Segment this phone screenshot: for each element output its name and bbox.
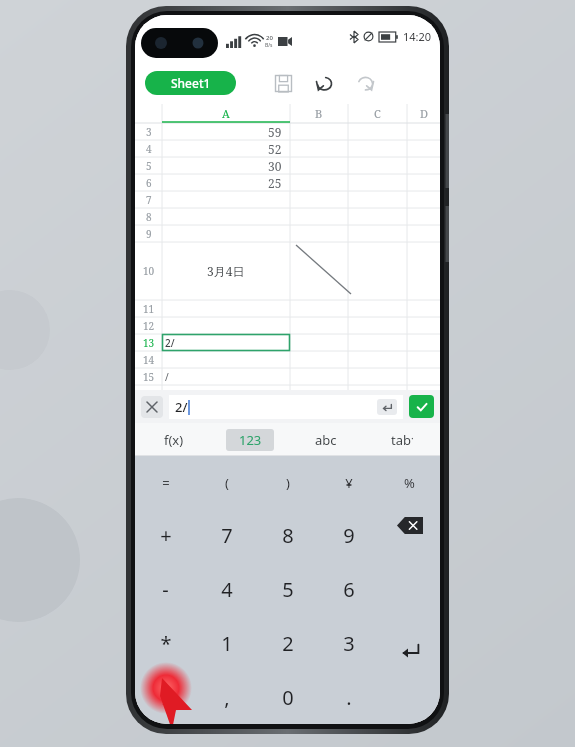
button[interactable]: Sheet1 (145, 71, 236, 95)
button[interactable]: 7 (135, 191, 440, 208)
button[interactable]: 4 (196, 562, 257, 616)
button[interactable]: 5 (257, 562, 318, 616)
staticText: 2/ (175, 398, 188, 416)
staticText: 8 (146, 210, 152, 224)
button[interactable]: 12 (135, 317, 440, 334)
staticText: abc (315, 431, 337, 449)
button[interactable]: , (196, 670, 257, 724)
staticText: 20 (266, 34, 273, 42)
staticText: 2/ (165, 336, 175, 350)
staticText: · (411, 431, 414, 445)
button[interactable]: 1 (196, 616, 257, 670)
button[interactable]: 3 (318, 616, 379, 670)
staticText: 123 (239, 431, 262, 449)
staticText: 7 (221, 522, 233, 549)
button[interactable]: 2/ (169, 395, 403, 419)
button[interactable]: 7 (196, 509, 257, 562)
button[interactable]: Confirm (409, 395, 434, 418)
button[interactable]: f(x) (135, 423, 212, 456)
button[interactable]: New line (377, 399, 397, 415)
staticText: 15 (143, 370, 155, 384)
staticText: 5 (146, 159, 152, 173)
button[interactable]: Save (268, 68, 298, 98)
button[interactable]: ) (257, 456, 318, 509)
button[interactable]: B (290, 104, 348, 123)
button[interactable]: 14 (135, 351, 440, 368)
staticText: 7 (146, 193, 152, 207)
staticText: . (346, 684, 352, 711)
button[interactable]: Redo (350, 68, 380, 98)
button[interactable]: ( (196, 456, 257, 509)
button[interactable]: 11 (135, 300, 440, 317)
staticText: B/s (265, 42, 273, 49)
staticText: 14 (143, 353, 155, 367)
staticText: 4 (221, 576, 233, 603)
staticText: A (222, 106, 230, 121)
button[interactable]: 13 (135, 334, 440, 351)
button[interactable]: 0 (257, 670, 318, 724)
button[interactable]: 6 (135, 174, 440, 191)
button[interactable]: A (162, 104, 290, 123)
staticText: 9 (343, 522, 355, 549)
button[interactable]: 5 (135, 157, 440, 174)
button[interactable]: Undo (309, 68, 339, 98)
staticText: 4 (146, 142, 152, 156)
staticText: 10 (143, 264, 155, 278)
staticText: 5 (282, 576, 294, 603)
staticText: ) (286, 474, 290, 492)
staticText: 6 (343, 576, 355, 603)
staticText: ¥ (345, 474, 353, 492)
staticText: / (165, 370, 169, 384)
staticText: - (162, 576, 169, 603)
button[interactable]: / (135, 670, 196, 724)
button[interactable]: Delete (379, 509, 440, 562)
staticText: tab (391, 431, 411, 449)
button[interactable]: 8 (135, 208, 440, 225)
button[interactable]: 6 (318, 562, 379, 616)
button[interactable]: 9 (318, 509, 379, 562)
button[interactable]: - (135, 562, 196, 616)
button[interactable]: 2 (257, 616, 318, 670)
button[interactable]: = (135, 456, 196, 509)
button[interactable]: ¥ (318, 456, 379, 509)
staticText: 13 (143, 336, 155, 350)
button[interactable]: % (379, 456, 440, 509)
staticText: 14:20 (403, 29, 432, 44)
button[interactable]: . (318, 670, 379, 724)
staticText: 11 (143, 302, 155, 316)
button[interactable]: 123 (226, 429, 274, 451)
button[interactable]: * (135, 616, 196, 670)
staticText: = (162, 474, 170, 492)
button[interactable]: 8 (257, 509, 318, 562)
staticText: / (162, 684, 170, 711)
button[interactable]: Cancel (141, 396, 163, 418)
button[interactable]: D (407, 104, 440, 123)
button[interactable]: 10 (135, 242, 440, 300)
button[interactable]: abc (288, 423, 364, 456)
staticText: 3月4日 (207, 263, 245, 279)
staticText: C (374, 106, 381, 121)
button[interactable]: 4 (135, 140, 440, 157)
staticText: f(x) (164, 431, 184, 449)
staticText: Sheet1 (171, 75, 211, 91)
staticText: , (224, 684, 230, 711)
button[interactable]: 3 (135, 123, 440, 140)
button[interactable]: Enter (379, 616, 440, 670)
staticText: ( (225, 474, 229, 492)
staticText: 3 (343, 630, 355, 657)
staticText: 3 (146, 125, 152, 139)
staticText: % (404, 474, 415, 492)
button[interactable]: C (348, 104, 407, 123)
staticText: 9 (146, 227, 152, 241)
button[interactable]: + (135, 509, 196, 562)
button[interactable]: tab (364, 423, 440, 456)
button[interactable]: 15 (135, 368, 440, 385)
staticText: 12 (143, 319, 155, 333)
staticText: 0 (282, 684, 294, 711)
staticText: 52 (268, 141, 282, 157)
staticText: 1 (221, 630, 233, 657)
button[interactable] (379, 670, 440, 724)
button[interactable]: 9 (135, 225, 440, 242)
staticText: 25 (268, 175, 282, 191)
